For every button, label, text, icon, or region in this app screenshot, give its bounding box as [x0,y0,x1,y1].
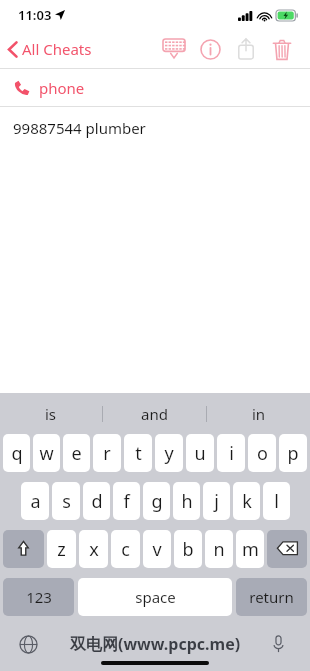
button[interactable]: j [203,482,230,520]
button[interactable]: t [124,434,152,472]
staticText: w [39,441,54,466]
button[interactable]: o [248,434,276,472]
staticText: q [11,441,23,466]
button[interactable]: p [279,434,307,472]
button[interactable]: Change keyboard [16,632,40,656]
staticText: 123 [26,587,52,607]
button[interactable]: m [236,530,264,568]
staticText: b [182,537,194,562]
button[interactable]: Shift [3,530,44,568]
staticText: and [141,404,168,424]
button[interactable]: 123 [3,578,74,616]
button[interactable]: space [78,578,232,616]
button[interactable]: Delete [264,31,300,67]
staticText: 11:03 [18,6,52,24]
staticText: k [242,489,252,514]
staticText: e [71,441,82,466]
staticText: d [91,489,103,514]
button[interactable]: in [207,393,310,434]
button[interactable]: q [3,434,30,472]
staticText: y [164,441,174,466]
button[interactable]: Backspace [267,530,307,568]
staticText: u [194,441,206,466]
button[interactable]: c [111,530,140,568]
button[interactable]: Info [192,31,228,67]
button[interactable]: a [21,482,49,520]
staticText: a [30,489,41,514]
staticText: g [151,489,163,514]
button[interactable]: u [186,434,214,472]
button[interactable]: n [205,530,233,568]
button[interactable]: z [47,530,76,568]
staticText: r [103,441,111,466]
button[interactable]: x [79,530,108,568]
staticText: p [287,441,299,466]
staticText: l [274,489,279,514]
staticText: f [123,489,130,514]
button[interactable]: h [173,482,200,520]
button[interactable]: d [83,482,110,520]
staticText: c [121,537,130,562]
button[interactable]: Hide keyboard [156,31,192,67]
button[interactable]: Dictation [266,632,290,656]
button[interactable]: r [93,434,121,472]
staticText: z [57,537,66,562]
button[interactable]: v [143,530,171,568]
staticText: t [135,441,142,466]
staticText: s [62,489,71,514]
staticText: i [229,441,234,466]
staticText: m [242,537,259,562]
button[interactable]: and [103,393,206,434]
staticText: space [135,587,176,607]
staticText: j [214,489,219,514]
button[interactable]: f [113,482,140,520]
button[interactable]: return [236,578,307,616]
staticText: in [252,404,266,424]
button[interactable]: g [143,482,170,520]
staticText: h [181,489,193,514]
button[interactable]: l [263,482,290,520]
staticText: 99887544 plumber [13,118,146,138]
staticText: n [213,537,225,562]
button[interactable]: e [63,434,90,472]
button[interactable]: y [155,434,183,472]
staticText: 双电网(www.pcpc.me) [70,633,241,655]
staticText: return [249,587,294,607]
button[interactable]: All Cheats [0,35,100,63]
staticText: o [257,441,268,466]
button[interactable]: b [174,530,202,568]
staticText: v [152,537,162,562]
button[interactable]: i [217,434,245,472]
button[interactable]: k [233,482,260,520]
staticText: All Cheats [22,39,92,59]
staticText: x [89,537,99,562]
staticText: phone [39,78,85,98]
staticText: is [45,404,57,424]
button[interactable]: s [52,482,80,520]
button[interactable]: Share [228,31,264,67]
button[interactable]: is [0,393,102,434]
button[interactable]: w [33,434,60,472]
